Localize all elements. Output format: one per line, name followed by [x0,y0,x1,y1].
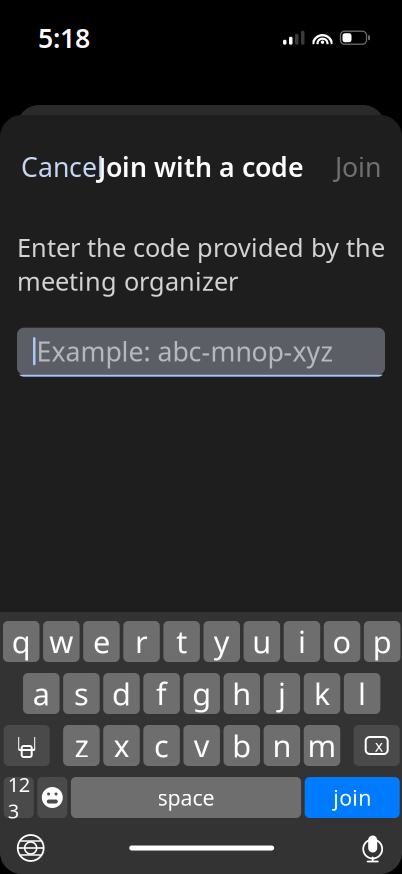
button[interactable]: w [43,621,80,662]
button[interactable]: q [3,621,39,662]
staticText: p [373,621,392,662]
button[interactable]: Join [331,141,385,192]
button[interactable]: r [123,621,160,662]
staticText: x [113,725,129,766]
button[interactable]: o [324,621,360,662]
button[interactable]: Cancel [17,141,108,192]
staticText: f [156,673,167,714]
staticText: b [232,725,251,766]
button[interactable]: u [244,621,280,662]
button[interactable]: Next keyboard [13,830,49,866]
staticText: Join [335,149,381,184]
button[interactable]: j [264,673,300,714]
button[interactable]: y [203,621,240,662]
staticText: 5:18 [38,20,90,55]
button[interactable]: space [71,777,301,818]
staticText: v [194,725,210,766]
button[interactable]: s [63,673,100,714]
button[interactable]: t [163,621,200,662]
button[interactable]: Shift [4,725,50,766]
staticText: j [278,673,286,714]
staticText: 123 [8,771,30,824]
button[interactable]: z [63,725,100,766]
staticText: y [214,621,230,662]
staticText: Cancel [21,149,104,184]
staticText: g [192,673,211,714]
button[interactable]: l [344,673,380,714]
staticText: z [74,725,88,766]
button[interactable]: 123 [4,777,34,818]
staticText: o [333,621,352,662]
staticText: u [252,621,271,662]
button[interactable]: p [364,621,400,662]
button[interactable]: f [143,673,180,714]
button[interactable]: i [284,621,320,662]
staticText: n [272,725,291,766]
staticText: Enter the code provided by the meeting o… [17,230,385,298]
staticText: s [74,673,89,714]
button[interactable]: Dictate [355,830,391,866]
button[interactable]: b [224,725,260,766]
button[interactable]: v [183,725,220,766]
staticText: k [314,673,330,714]
staticText: h [232,673,251,714]
button[interactable]: h [223,673,260,714]
staticText: w [49,621,73,662]
button[interactable]: Emoji [37,777,67,818]
staticText: a [33,673,50,714]
staticText: l [358,673,366,714]
button[interactable]: x [103,725,140,766]
button[interactable]: e [83,621,120,662]
button[interactable]: d [103,673,140,714]
staticText: c [154,725,169,766]
staticText: space [157,783,214,812]
staticText: i [298,621,306,662]
button[interactable]: n [264,725,300,766]
staticText: Example: abc-mnop-xyz [36,333,333,369]
staticText: d [112,673,131,714]
button[interactable]: m [304,725,340,766]
staticText: x [375,735,383,756]
staticText: m [307,725,336,766]
button[interactable]: k [304,673,340,714]
staticText: e [93,621,110,662]
staticText: join [333,783,371,812]
staticText: q [12,621,31,662]
button[interactable]: a [23,673,59,714]
button[interactable]: c [143,725,180,766]
staticText: t [176,621,187,662]
staticText: Join with a code [98,149,304,184]
button[interactable]: Delete [354,725,400,766]
button[interactable]: g [183,673,220,714]
staticText: r [135,621,148,662]
button[interactable]: join [305,777,400,818]
